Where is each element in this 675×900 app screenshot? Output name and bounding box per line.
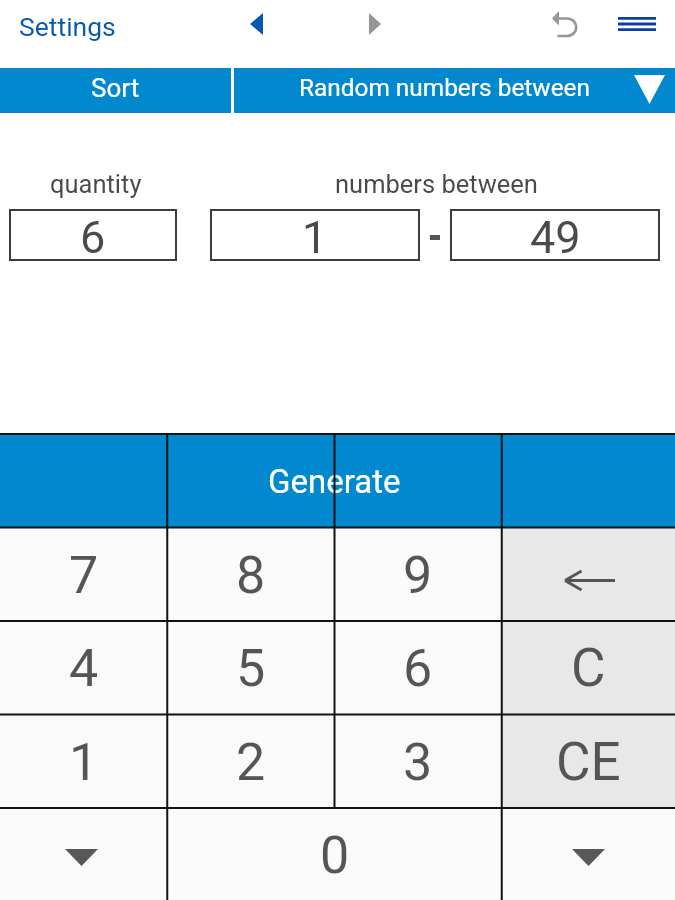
button[interactable]: Menu bbox=[608, 2, 666, 46]
staticText: numbers between bbox=[335, 169, 538, 199]
staticText: 0 bbox=[320, 825, 350, 886]
staticText: 6 bbox=[80, 211, 106, 263]
button[interactable]: 49 bbox=[450, 209, 660, 261]
button[interactable]: 9 bbox=[334, 528, 501, 622]
staticText: C bbox=[571, 637, 606, 699]
button[interactable]: 5 bbox=[167, 621, 334, 715]
staticText: Random numbers between bbox=[299, 73, 590, 102]
button[interactable]: 6 bbox=[9, 209, 177, 261]
staticText: 5 bbox=[236, 638, 266, 699]
staticText: 2 bbox=[236, 732, 266, 793]
button[interactable]: 7 bbox=[0, 528, 167, 622]
button[interactable]: Next bbox=[355, 4, 395, 44]
button[interactable]: Backspace bbox=[501, 528, 675, 622]
staticText: 9 bbox=[403, 545, 433, 606]
button[interactable]: Previous result bbox=[0, 434, 167, 528]
button[interactable]: C bbox=[501, 621, 675, 715]
button[interactable]: 1 bbox=[210, 209, 420, 261]
staticText: 8 bbox=[236, 545, 266, 606]
button[interactable]: 3 bbox=[334, 715, 501, 809]
button[interactable]: Next result bbox=[502, 434, 675, 528]
staticText: 7 bbox=[69, 545, 99, 606]
button[interactable]: Decrease quantity bbox=[0, 808, 167, 900]
button[interactable]: Previous bbox=[236, 4, 276, 44]
staticText: Settings bbox=[19, 11, 116, 42]
button[interactable]: 8 bbox=[167, 528, 334, 622]
staticText: quantity bbox=[50, 169, 142, 199]
button[interactable]: 2 bbox=[167, 715, 334, 809]
staticText: 1 bbox=[69, 732, 99, 793]
staticText: 6 bbox=[403, 638, 433, 699]
staticText: 3 bbox=[403, 732, 433, 793]
button[interactable]: Generate bbox=[167, 434, 502, 528]
staticText: Sort bbox=[91, 73, 140, 103]
button[interactable]: 0 bbox=[167, 808, 502, 900]
staticText: 4 bbox=[69, 638, 99, 699]
staticText: CE bbox=[556, 731, 621, 793]
staticText: 49 bbox=[530, 211, 581, 263]
staticText: 1 bbox=[302, 211, 328, 263]
button[interactable]: Sort bbox=[0, 68, 231, 113]
button[interactable]: Undo bbox=[543, 3, 585, 45]
button[interactable]: 6 bbox=[334, 621, 501, 715]
staticText: Generate bbox=[268, 462, 401, 501]
button[interactable]: Random numbers between bbox=[234, 68, 675, 113]
button[interactable]: Settings bbox=[13, 7, 122, 46]
button[interactable]: 1 bbox=[0, 715, 167, 809]
button[interactable]: 4 bbox=[0, 621, 167, 715]
button[interactable]: Decrease maximum bbox=[502, 808, 675, 900]
button[interactable]: CE bbox=[501, 715, 675, 809]
